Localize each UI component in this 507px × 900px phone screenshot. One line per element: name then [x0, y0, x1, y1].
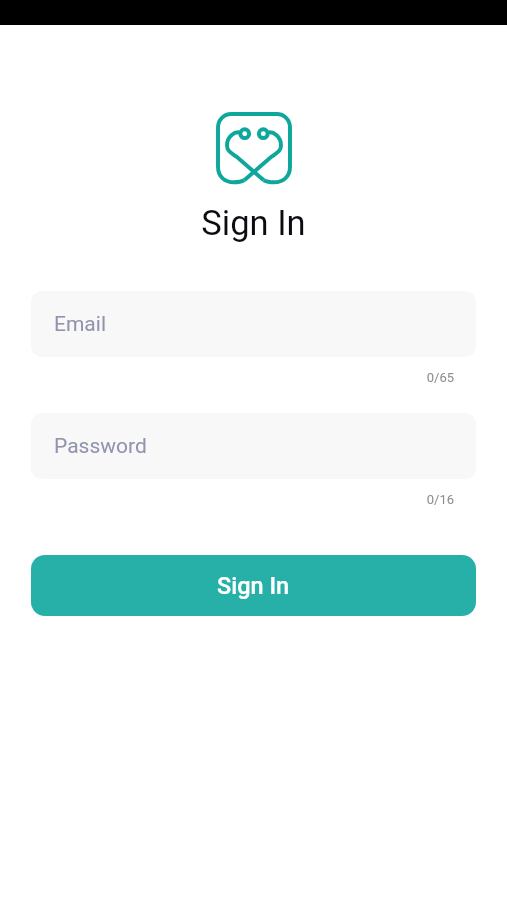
staticText: Password — [54, 434, 147, 459]
button[interactable]: Email — [31, 291, 476, 357]
button[interactable]: Sign In — [31, 555, 476, 616]
staticText: Email — [54, 312, 106, 337]
staticText: Sign In — [0, 203, 507, 243]
button[interactable]: Password — [31, 413, 476, 479]
staticText: Sign In — [217, 572, 290, 600]
staticText: 0/16 — [31, 492, 454, 507]
staticText: 0/65 — [31, 370, 454, 385]
